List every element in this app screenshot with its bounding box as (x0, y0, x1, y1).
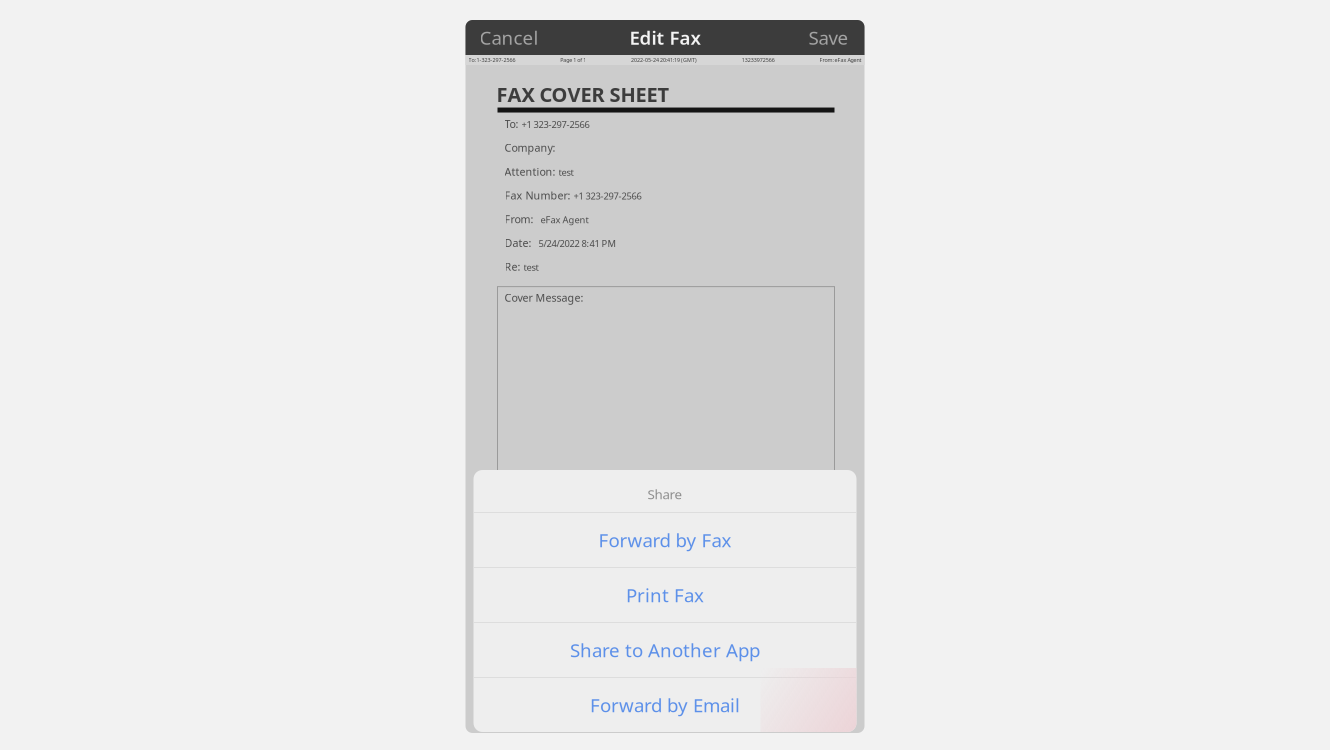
button[interactable]: Share to Another App (473, 623, 856, 677)
staticText: 2022-05-24 20:41:19 (GMT) (631, 56, 697, 64)
staticText: Print Fax (626, 583, 704, 607)
staticText: Save (808, 25, 848, 50)
staticText: Edit Fax (629, 25, 700, 50)
staticText: Company: (504, 141, 555, 155)
button[interactable]: Save (796, 20, 864, 55)
staticText: Share (647, 485, 682, 503)
staticText: Forward by Email (590, 693, 740, 717)
staticText: Fax Number: (504, 188, 570, 202)
staticText: Forward by Fax (598, 528, 731, 552)
staticText: From: eFax Agent (819, 56, 861, 64)
staticText: Attention: (504, 164, 555, 179)
staticText: test (523, 261, 538, 273)
staticText: test (558, 166, 573, 178)
button[interactable]: Forward by Email (473, 678, 856, 732)
staticText: 5/24/2022 8:41 PM (538, 237, 615, 250)
staticText: eFax Agent (540, 213, 588, 226)
staticText: To: 1-323-297-2566 (468, 56, 515, 64)
staticText: FAX COVER SHEET (496, 81, 669, 108)
staticText: Share to Another App (570, 638, 760, 662)
staticText: Page 1 of 1 (560, 56, 586, 64)
button[interactable]: Cancel (465, 20, 550, 55)
staticText: Cancel (479, 25, 538, 50)
staticText: To: (504, 117, 518, 131)
staticText: Date: (504, 236, 531, 250)
staticText: Re: (504, 260, 520, 274)
staticText: +1 323-297-2566 (521, 118, 589, 131)
staticText: +1 323-297-2566 (573, 190, 641, 202)
button[interactable]: Forward by Fax (473, 513, 856, 567)
staticText: From: (504, 212, 533, 226)
staticText: Cover Message: (504, 291, 583, 305)
staticText: 13233972566 (742, 56, 775, 64)
button[interactable]: Print Fax (473, 568, 856, 622)
